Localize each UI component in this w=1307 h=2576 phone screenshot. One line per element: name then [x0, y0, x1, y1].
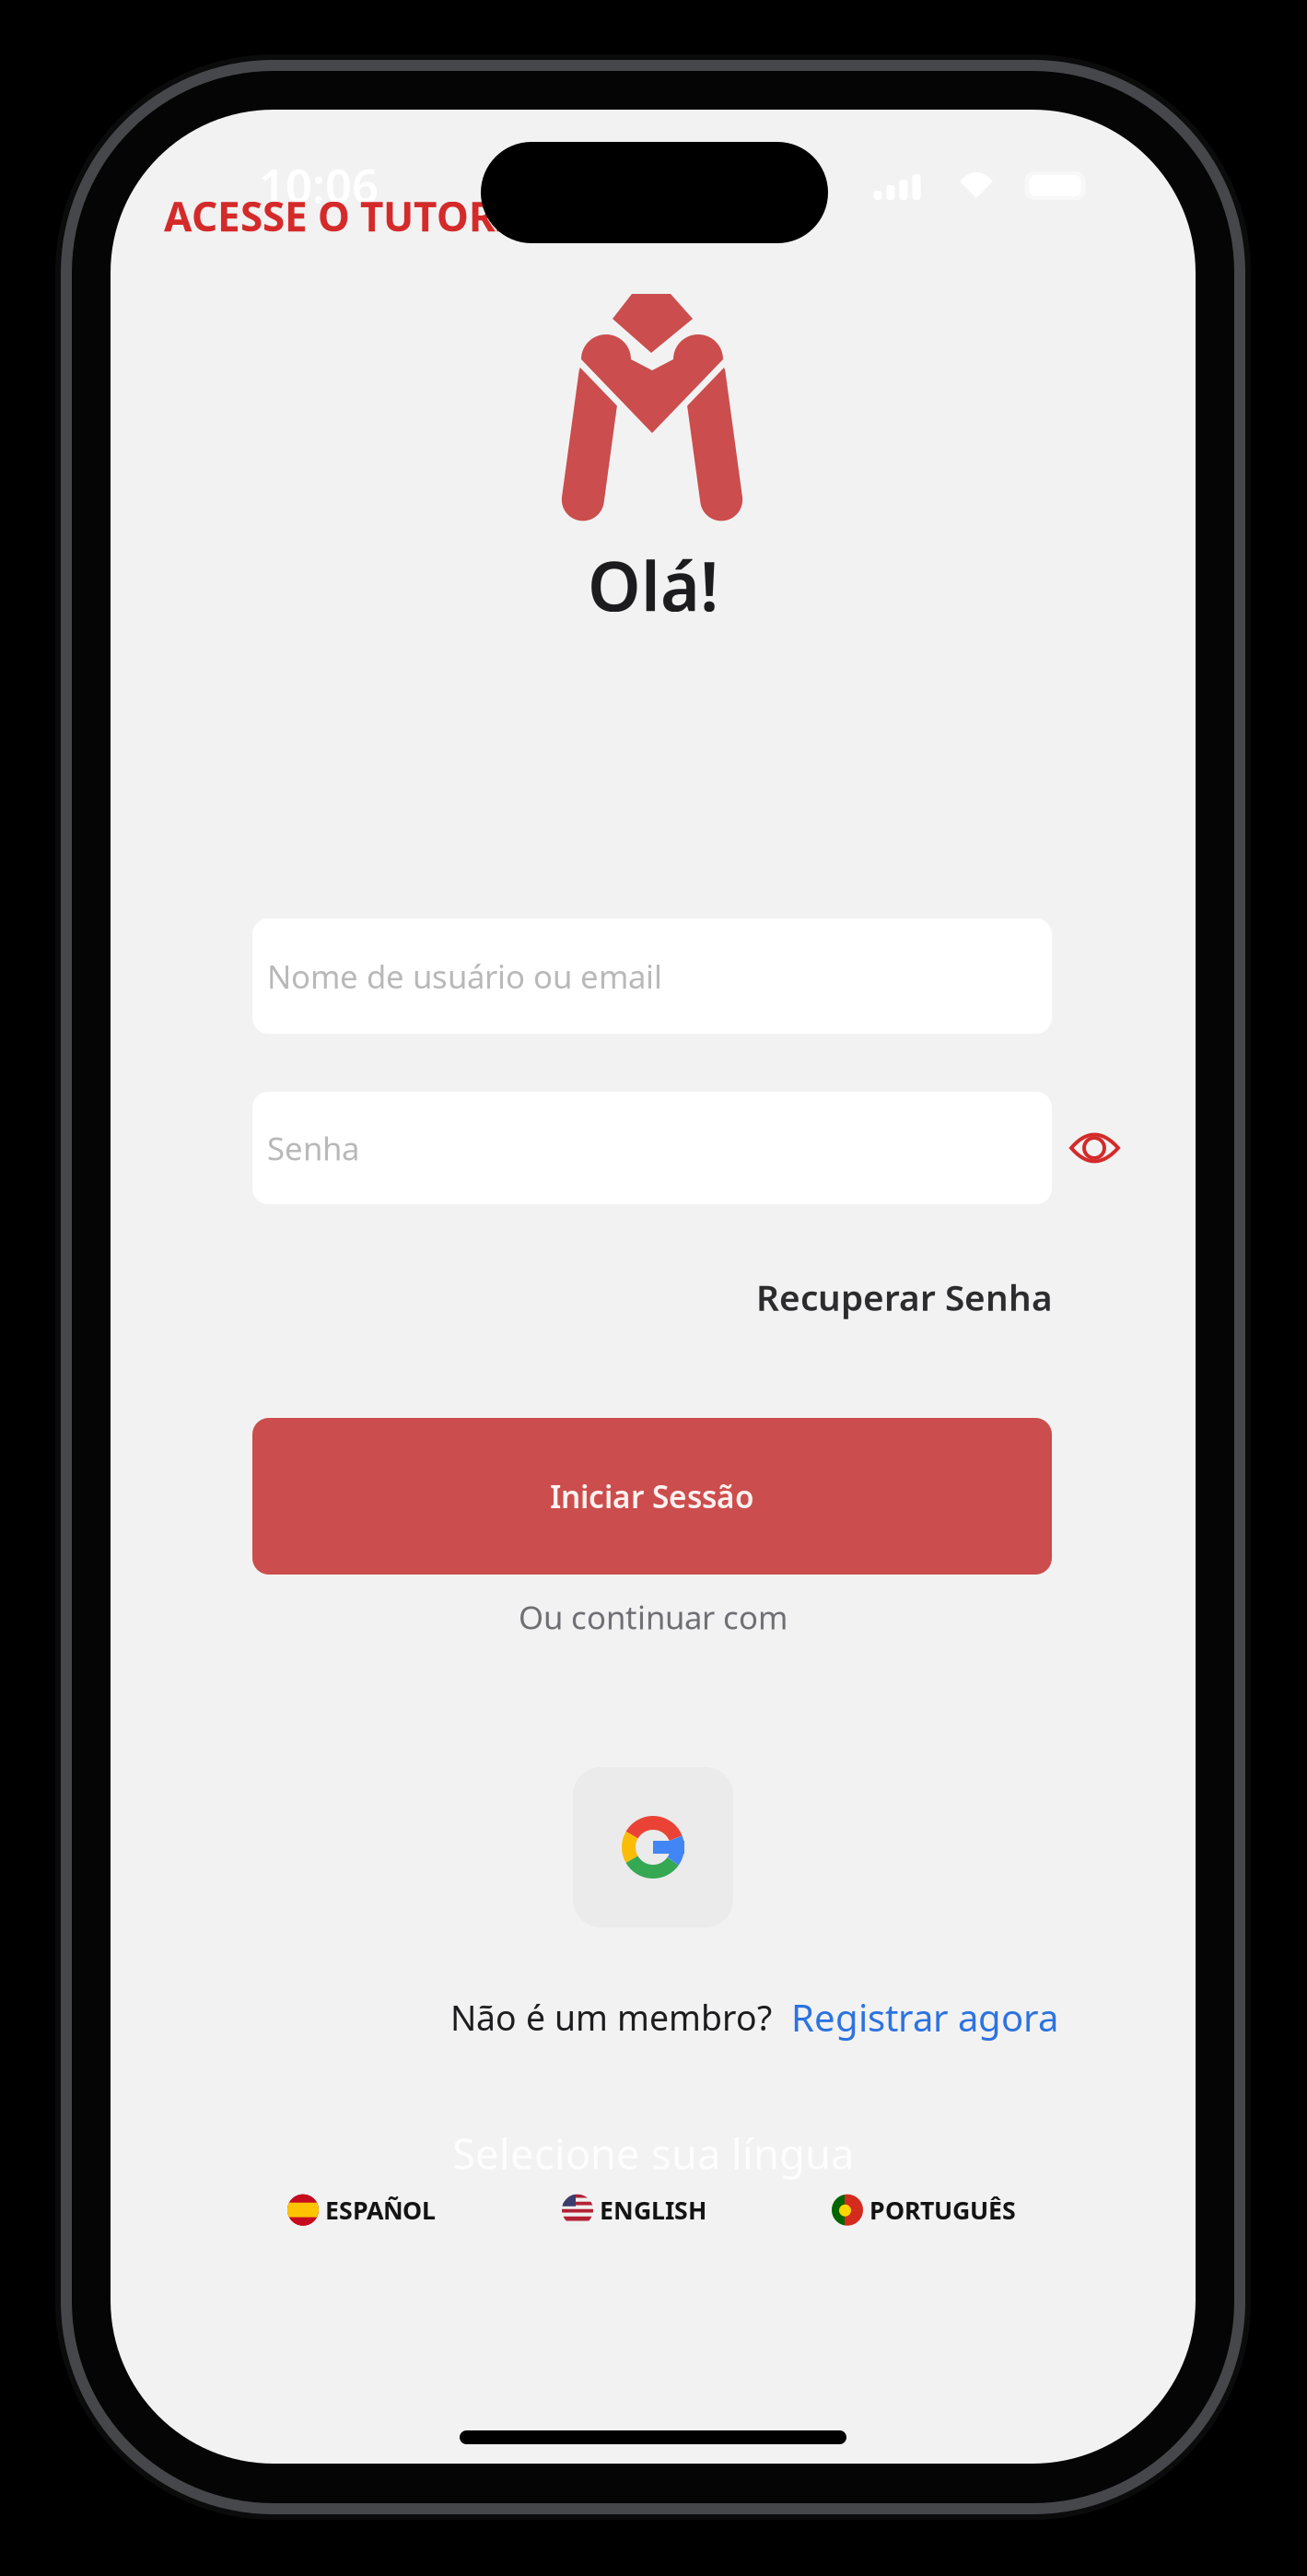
staticText: ENGLISH — [600, 2194, 706, 2226]
staticText: ACESSE O TUTORIAL — [164, 189, 562, 243]
button[interactable]: ACESSE O TUTORIAL — [164, 189, 562, 243]
button[interactable]: Mostrar senha — [1068, 1131, 1121, 1165]
staticText: Olá! — [588, 540, 718, 630]
staticText: Recuperar Senha — [756, 1273, 1053, 1321]
staticText: ESPAÑOL — [325, 2194, 436, 2226]
staticText: Selecione sua língua — [452, 2125, 854, 2181]
button[interactable]: Nome de usuário ou email — [252, 919, 1052, 1034]
staticText: Ou continuar com — [519, 1596, 788, 1638]
staticText: Não é um membro? — [450, 1994, 772, 2040]
staticText: Nome de usuário ou email — [267, 955, 662, 997]
button[interactable]: Registrar agora — [791, 1993, 1058, 2042]
button[interactable]: Senha — [252, 1092, 1052, 1204]
staticText: Senha — [267, 1127, 359, 1169]
button[interactable]: ESPAÑOL — [287, 2194, 436, 2226]
staticText: PORTUGUÊS — [869, 2194, 1016, 2226]
button[interactable]: PORTUGUÊS — [832, 2194, 1016, 2226]
button[interactable]: Recuperar Senha — [756, 1273, 1053, 1321]
staticText: 10:06 — [259, 154, 379, 216]
button[interactable]: Iniciar Sessão — [252, 1418, 1052, 1575]
staticText: Registrar agora — [791, 1993, 1058, 2042]
button[interactable]: ENGLISH — [562, 2194, 706, 2226]
button[interactable]: Continuar com Google — [573, 1767, 733, 1927]
staticText: Iniciar Sessão — [550, 1476, 754, 1517]
